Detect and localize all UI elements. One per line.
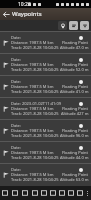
staticText: Altitude 427 m <box>61 111 89 116</box>
button[interactable]: Tool 8 <box>75 186 84 200</box>
button[interactable]: Tool 1 <box>10 186 20 200</box>
staticText: Date: 2023-01-04T09:33:50 <box>11 167 60 172</box>
button[interactable]: Date: 2023-01-04T09:33:50 <box>0 163 91 185</box>
staticText: Distance: 1987.5 M km <box>11 128 54 133</box>
button[interactable]: Date: 2023-01-02T07:18:40 <box>0 75 91 97</box>
button[interactable]: Tool 5 <box>48 186 57 200</box>
button[interactable]: Date: 2023-01-03T08:54:31 <box>0 119 91 141</box>
staticText: Floating Point <box>62 128 89 133</box>
staticText: Track: 2021-8-28 10:04:25 <box>11 111 59 116</box>
staticText: Altitude 63.0 m <box>60 177 89 182</box>
staticText: Distance: 1987.5 M km <box>11 150 54 155</box>
staticText: Date: 2023-01-02T11:41:09 <box>11 101 61 106</box>
staticText: Floating Point <box>62 40 89 45</box>
button[interactable]: Tool 0 <box>0 186 10 200</box>
staticText: Altitude 96.0 m <box>60 133 89 138</box>
button[interactable]: Tool 4 <box>39 186 48 200</box>
staticText: 10:26 <box>18 1 31 8</box>
button[interactable]: Tool 2 <box>20 186 30 200</box>
staticText: Floating Point <box>62 106 89 111</box>
staticText: Floating Point <box>62 172 89 177</box>
staticText: Date: 2023-01-01T10:27:12 <box>11 57 60 62</box>
button[interactable]: Date: 2023-01-02T11:41:09 <box>0 97 91 119</box>
staticText: Altitude 44.0 m <box>60 155 89 160</box>
button[interactable]: More options <box>84 186 91 200</box>
staticText: Altitude 47.0 m <box>60 45 89 50</box>
staticText: Floating Point <box>62 62 89 67</box>
button[interactable]: Date: 2023-01-01T09:05:03 <box>0 31 91 53</box>
button[interactable]: Back <box>0 8 12 20</box>
staticText: Date: 2023-01-02T07:18:40 <box>11 79 60 84</box>
staticText: Track: 2021-8-28 10:04:25 <box>11 133 59 138</box>
staticText: Floating Point <box>62 150 89 155</box>
staticText: Altitude 41.0 m <box>60 89 89 94</box>
button[interactable]: Sort <box>69 21 78 30</box>
button[interactable]: Date: 2023-01-01T10:27:12 <box>0 53 91 75</box>
button[interactable]: Add waypoint <box>58 21 67 30</box>
staticText: Floating Point <box>62 84 89 89</box>
staticText: Track: 2021-8-28 10:04:25 <box>11 89 59 94</box>
button[interactable]: Date: 2023-01-03T15:02:27 <box>0 141 91 163</box>
staticText: Track: 2021-8-28 10:04:25 <box>11 45 59 50</box>
button[interactable]: Filter <box>80 21 89 30</box>
button[interactable]: Tool 3 <box>30 186 39 200</box>
staticText: Track: 2021-8-28 10:04:25 <box>11 177 59 182</box>
staticText: Date: 2023-01-03T15:02:27 <box>11 145 60 150</box>
staticText: Distance: 1987.5 M km <box>11 84 54 89</box>
staticText: Distance: 1987.5 M km <box>11 106 54 111</box>
staticText: Track: 2021-8-28 10:04:25 <box>11 67 59 72</box>
staticText: Distance: 1987.5 M km <box>11 62 54 67</box>
button[interactable]: Tool 6 <box>57 186 66 200</box>
staticText: Date: 2023-01-03T08:54:31 <box>11 123 60 128</box>
staticText: Waypoints <box>12 10 42 18</box>
staticText: Distance: 1987.5 M km <box>11 172 54 177</box>
button[interactable]: Tool 7 <box>66 186 75 200</box>
staticText: Distance: 1987.5 M km <box>11 40 54 45</box>
staticText: Date: 2023-01-01T09:05:03 <box>11 35 60 40</box>
staticText: Track: 2021-8-28 10:04:25 <box>11 155 59 160</box>
staticText: Altitude 52.0 m <box>60 67 89 72</box>
